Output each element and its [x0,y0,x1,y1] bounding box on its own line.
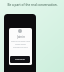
button[interactable]: Continue [10,56,30,63]
staticText: Be a part of the real conversation. [7,3,58,7]
staticText: Join in [17,35,25,39]
staticText: Continue [15,58,25,61]
staticText: Sign in to reply and share what matters … [11,40,30,49]
